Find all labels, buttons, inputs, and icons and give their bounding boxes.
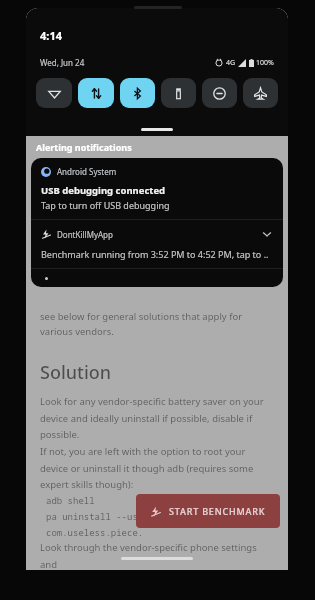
staticText: If not, you are left with the option to … [40,445,274,490]
staticText: Look for any vendor-specific battery sav… [40,395,274,440]
staticText: DEVICE [40,158,74,168]
button[interactable]: Airplane mode [243,78,278,108]
staticText: Look through the vendor-specific phone s… [40,541,274,570]
staticText: com.useless.piece. [46,526,144,538]
staticText: Android System [57,166,117,177]
button[interactable] [31,269,283,287]
button[interactable]: START BENCHMARK [136,494,280,528]
button[interactable]: DontKillMyApp [31,220,283,268]
button[interactable]: Mobile data [78,78,114,108]
button[interactable]: Android System [31,158,283,219]
staticText: Tap to turn off USB debugging [41,199,170,211]
other: Expand [261,228,273,240]
button[interactable]: Bluetooth [120,78,155,108]
button[interactable]: Wi-Fi [36,78,72,108]
staticText: pa uninstall --user [46,510,149,522]
staticText: 4:14 [40,28,62,43]
staticText: Alerting notifications [36,141,132,153]
button[interactable]: Do not disturb [202,78,237,108]
staticText: Solution [40,360,112,385]
staticText: see below for general solutions that app… [40,310,274,338]
staticText: 4G [226,58,236,68]
staticText: 100% [256,58,274,68]
button[interactable]: Flashlight [161,78,196,108]
staticText: USB debugging connected [41,184,166,197]
staticText: DontKillMyApp [57,229,113,240]
staticText: START BENCHMARK [169,505,266,517]
staticText: Wed, Jun 24 [40,57,85,68]
staticText: Benchmark running from 3:52 PM to 4:52 P… [41,248,269,260]
staticText: adb shell [46,494,95,506]
